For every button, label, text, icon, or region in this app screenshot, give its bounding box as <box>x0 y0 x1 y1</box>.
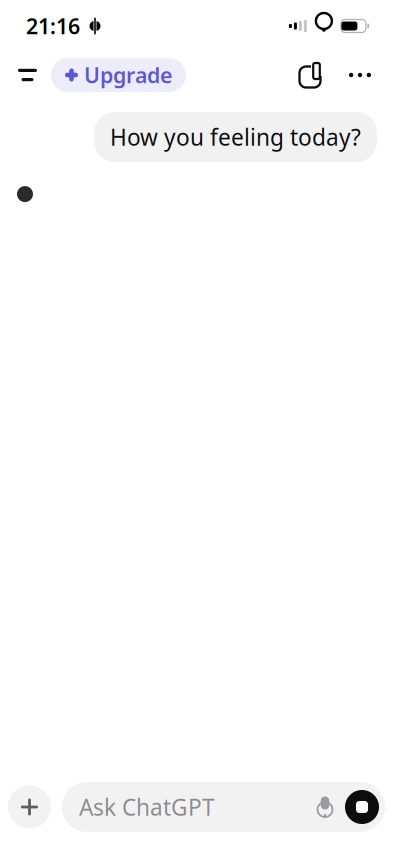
button[interactable]: Add attachment <box>8 785 51 828</box>
staticText: Ask ChatGPT <box>79 792 215 822</box>
button[interactable]: Sidebar <box>12 55 51 95</box>
button[interactable]: Upgrade <box>51 58 186 92</box>
staticText: How you feeling today? <box>110 122 361 152</box>
staticText: 21:16 <box>26 12 80 40</box>
button[interactable]: New chat <box>291 54 333 96</box>
button[interactable]: Stop generating <box>345 790 379 824</box>
staticText: Upgrade <box>84 61 172 89</box>
button[interactable]: Dictate <box>310 796 340 818</box>
button[interactable]: More options <box>339 54 381 96</box>
